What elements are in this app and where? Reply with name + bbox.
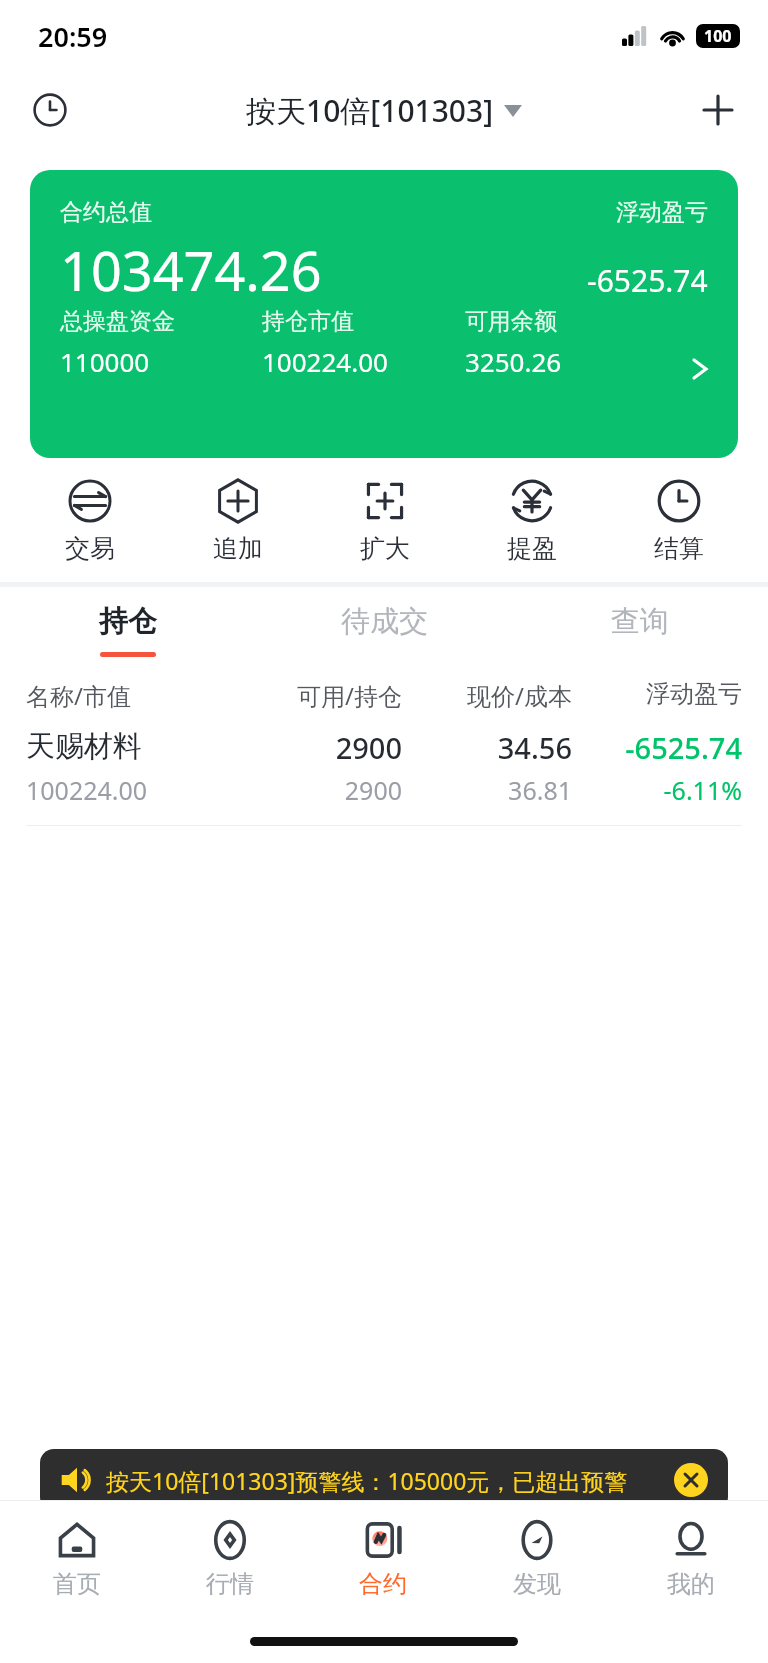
staticText: 可用余额 bbox=[465, 307, 557, 336]
staticText: -6525.74 bbox=[572, 728, 742, 767]
staticText: 按天10倍[101303]预警线：105000元，已超出预警线... bbox=[106, 1465, 664, 1496]
staticText: 合约 bbox=[359, 1569, 407, 1599]
staticText: 100 bbox=[704, 25, 732, 47]
button[interactable]: 发现 bbox=[460, 1501, 614, 1619]
staticText: 36.81 bbox=[402, 773, 572, 807]
staticText: 可用/持仓 bbox=[232, 679, 402, 712]
button[interactable]: 合约 bbox=[306, 1501, 460, 1619]
staticText: 我的 bbox=[667, 1569, 715, 1599]
staticText: 名称/市值 bbox=[26, 679, 232, 712]
staticText: 结算 bbox=[654, 533, 704, 564]
button[interactable]: Close bbox=[674, 1463, 708, 1497]
staticText: 行情 bbox=[206, 1569, 254, 1599]
staticText: 提盈 bbox=[507, 533, 557, 564]
staticText: 持仓市值 bbox=[262, 307, 354, 336]
staticText: 待成交 bbox=[341, 603, 428, 640]
staticText: 103474.26 bbox=[60, 233, 322, 307]
button[interactable]: 按天10倍[101303] bbox=[246, 90, 522, 131]
staticText: 浮动盈亏 bbox=[616, 198, 708, 227]
staticText: 20:59 bbox=[38, 18, 108, 55]
button[interactable]: 行情 bbox=[153, 1501, 306, 1619]
staticText: 100224.00 bbox=[26, 773, 232, 807]
staticText: 查询 bbox=[611, 603, 669, 640]
staticText: 合约总值 bbox=[60, 198, 152, 227]
staticText: 天赐材料 bbox=[26, 728, 232, 765]
staticText: 2900 bbox=[232, 728, 402, 767]
button[interactable]: 合约总值 bbox=[30, 170, 738, 458]
staticText: 3250.26 bbox=[465, 344, 562, 379]
staticText: 追加 bbox=[213, 533, 263, 564]
staticText: 发现 bbox=[513, 1569, 561, 1599]
button[interactable]: 提盈 bbox=[458, 472, 605, 570]
button[interactable]: 扩大 bbox=[311, 472, 458, 570]
staticText: 2900 bbox=[232, 773, 402, 807]
button[interactable]: 查询 bbox=[512, 587, 768, 669]
staticText: 100224.00 bbox=[262, 344, 388, 379]
button[interactable]: 结算 bbox=[605, 472, 752, 570]
button[interactable]: Add bbox=[690, 82, 746, 138]
staticText: 交易 bbox=[65, 533, 115, 564]
button[interactable]: 交易 bbox=[16, 472, 164, 570]
staticText: 按天10倍[101303] bbox=[246, 90, 494, 131]
staticText: 扩大 bbox=[360, 533, 410, 564]
button[interactable]: History bbox=[22, 82, 78, 138]
staticText: 首页 bbox=[53, 1569, 101, 1599]
button[interactable]: 我的 bbox=[614, 1501, 768, 1619]
staticText: 总操盘资金 bbox=[60, 307, 175, 336]
button[interactable]: 按天10倍[101303]预警线：105000元，已超出预警线... bbox=[40, 1449, 728, 1511]
staticText: 持仓 bbox=[99, 603, 157, 640]
staticText: -6525.74 bbox=[587, 260, 708, 301]
staticText: 现价/成本 bbox=[402, 679, 572, 712]
button[interactable]: 首页 bbox=[0, 1501, 153, 1619]
button[interactable]: 天赐材料 bbox=[0, 718, 768, 825]
staticText: 浮动盈亏 bbox=[572, 679, 742, 709]
button[interactable]: 持仓 bbox=[0, 587, 256, 669]
staticText: 110000 bbox=[60, 344, 150, 379]
staticText: 34.56 bbox=[402, 728, 572, 767]
button[interactable]: 待成交 bbox=[256, 587, 512, 669]
button[interactable]: 追加 bbox=[164, 472, 311, 570]
staticText: -6.11% bbox=[572, 773, 742, 807]
